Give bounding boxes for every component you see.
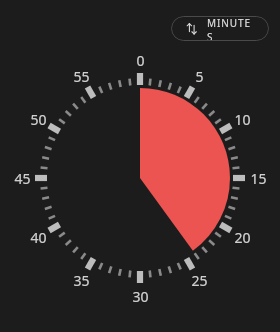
staticText: MINUTES — [207, 16, 257, 41]
staticText: 40 — [30, 228, 47, 247]
staticText: 10 — [234, 110, 251, 129]
staticText: 30 — [132, 287, 149, 306]
button[interactable]: Timer dial, 24 minutes — [0, 0, 280, 332]
staticText: 45 — [14, 169, 31, 188]
staticText: 0 — [136, 51, 145, 70]
staticText: 20 — [234, 228, 251, 247]
staticText: 15 — [250, 169, 267, 188]
staticText: 25 — [191, 271, 208, 290]
button[interactable]: Change time unit — [171, 16, 269, 41]
staticText: 35 — [73, 271, 90, 290]
other: Change time unit — [185, 22, 198, 35]
staticText: 55 — [73, 67, 90, 86]
staticText: 5 — [195, 67, 204, 86]
staticText: 50 — [30, 110, 47, 129]
